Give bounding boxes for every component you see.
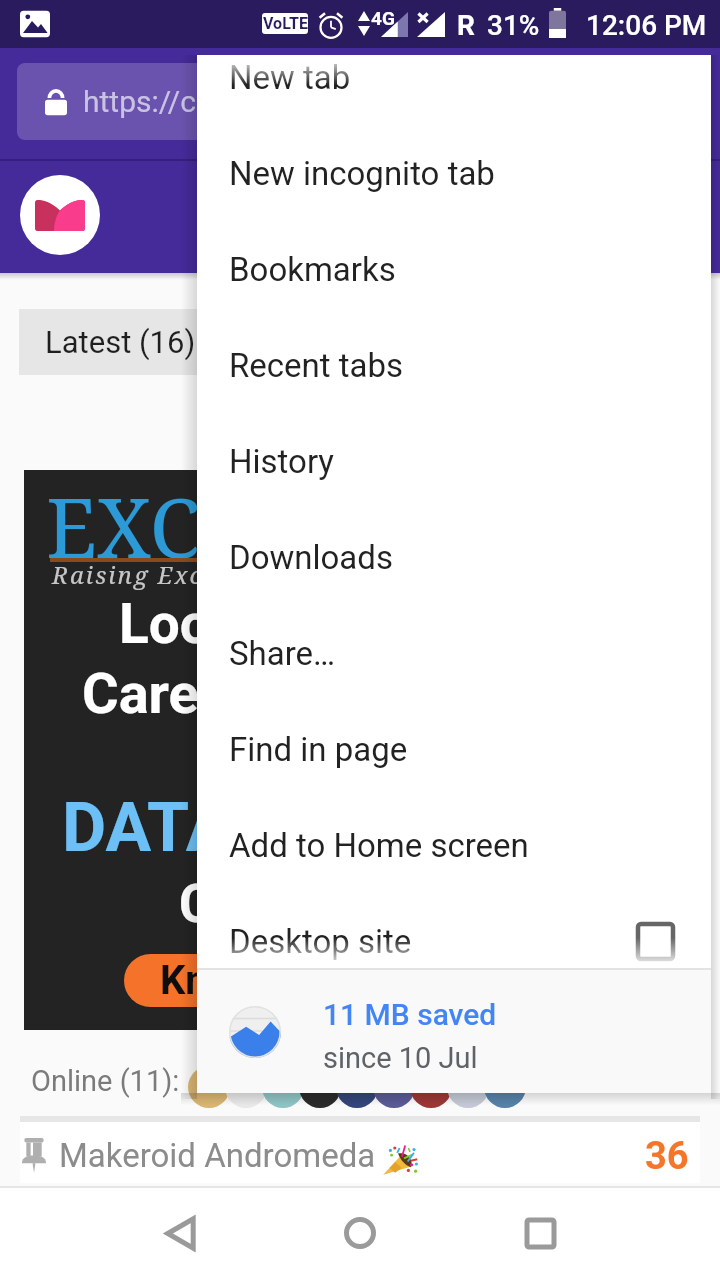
staticText: https://community.thunkable.com [83,84,535,119]
button[interactable]: New incognito tab [197,125,711,221]
staticText: Add to Home screen [229,826,529,865]
staticText: Makeroid Andromeda [59,1136,376,1175]
staticText: Bookmarks [229,250,396,289]
staticText: DATA SCIENCE [62,788,524,868]
staticText: 31% [487,9,540,42]
button[interactable]: Desktop site [197,893,711,989]
button[interactable]: Recent tabs [197,317,711,413]
staticText: Raising Excellence [52,558,294,591]
staticText: 4G [371,7,395,29]
button[interactable]: Downloads [197,509,711,605]
staticText: Career Change? [82,661,483,727]
button[interactable]: https://community.thunkable.com [17,63,703,140]
staticText: Share… [229,634,336,673]
staticText: New tab [229,58,351,97]
staticText: Find in page [229,730,408,769]
staticText: since 10 Jul [323,1041,478,1075]
button[interactable]: Know More [124,954,400,1007]
button[interactable]: Back [130,1186,230,1280]
staticText: Recent tabs [229,346,404,385]
staticText: 36 [645,1134,689,1179]
staticText: 11 MB saved [323,997,497,1032]
staticText: EXCELR [46,470,356,582]
staticText: Downloads [229,538,393,577]
staticText: R [457,9,475,42]
staticText: Desktop site [229,922,412,961]
button[interactable]: Latest (16) [19,309,222,375]
staticText: New incognito tab [229,154,495,193]
button[interactable]: History [197,413,711,509]
button[interactable]: Find in page [197,701,711,797]
button[interactable]: 11 MB saved [197,970,711,1093]
button[interactable]: EXCELR [24,470,696,1030]
staticText: 12:06 PM [586,9,707,42]
staticText: History [229,442,334,481]
staticText: VoLTE [263,14,308,33]
staticText: Looking for a [119,592,445,656]
staticText: Online (11): [31,1064,180,1098]
button[interactable]: New tab [197,29,711,125]
staticText: COURSE [179,873,382,935]
button[interactable]: Makeroid Andromeda [20,1122,700,1183]
button[interactable]: Share… [197,605,711,701]
button[interactable]: Home [310,1186,410,1280]
staticText: Know More [160,957,364,1004]
button[interactable]: Add to Home screen [197,797,711,893]
button[interactable]: Recent apps [490,1186,590,1280]
button[interactable]: Bookmarks [197,221,711,317]
staticText: Latest (16) [45,324,196,360]
